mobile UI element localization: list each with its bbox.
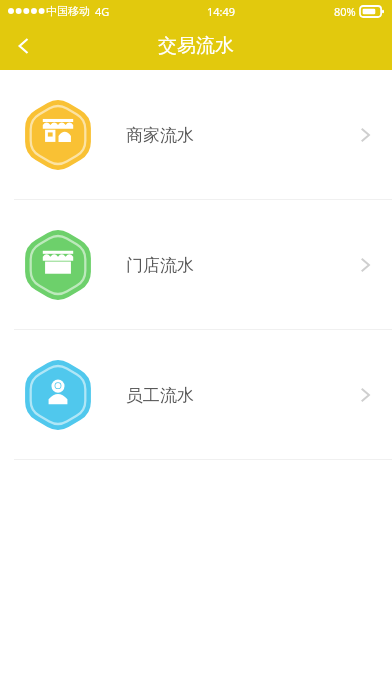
staticText: 中国移动: [46, 4, 90, 18]
button[interactable]: 员工流水: [0, 330, 392, 460]
button[interactable]: Back: [0, 22, 48, 70]
button[interactable]: 商家流水: [0, 70, 392, 200]
button[interactable]: 门店流水: [0, 200, 392, 330]
staticText: 门店流水: [126, 255, 194, 276]
staticText: 14:49: [207, 4, 236, 19]
staticText: 交易流水: [158, 34, 234, 58]
staticText: 员工流水: [126, 385, 194, 406]
staticText: 80%: [334, 4, 356, 19]
staticText: 4G: [95, 4, 110, 19]
staticText: 商家流水: [126, 125, 194, 146]
